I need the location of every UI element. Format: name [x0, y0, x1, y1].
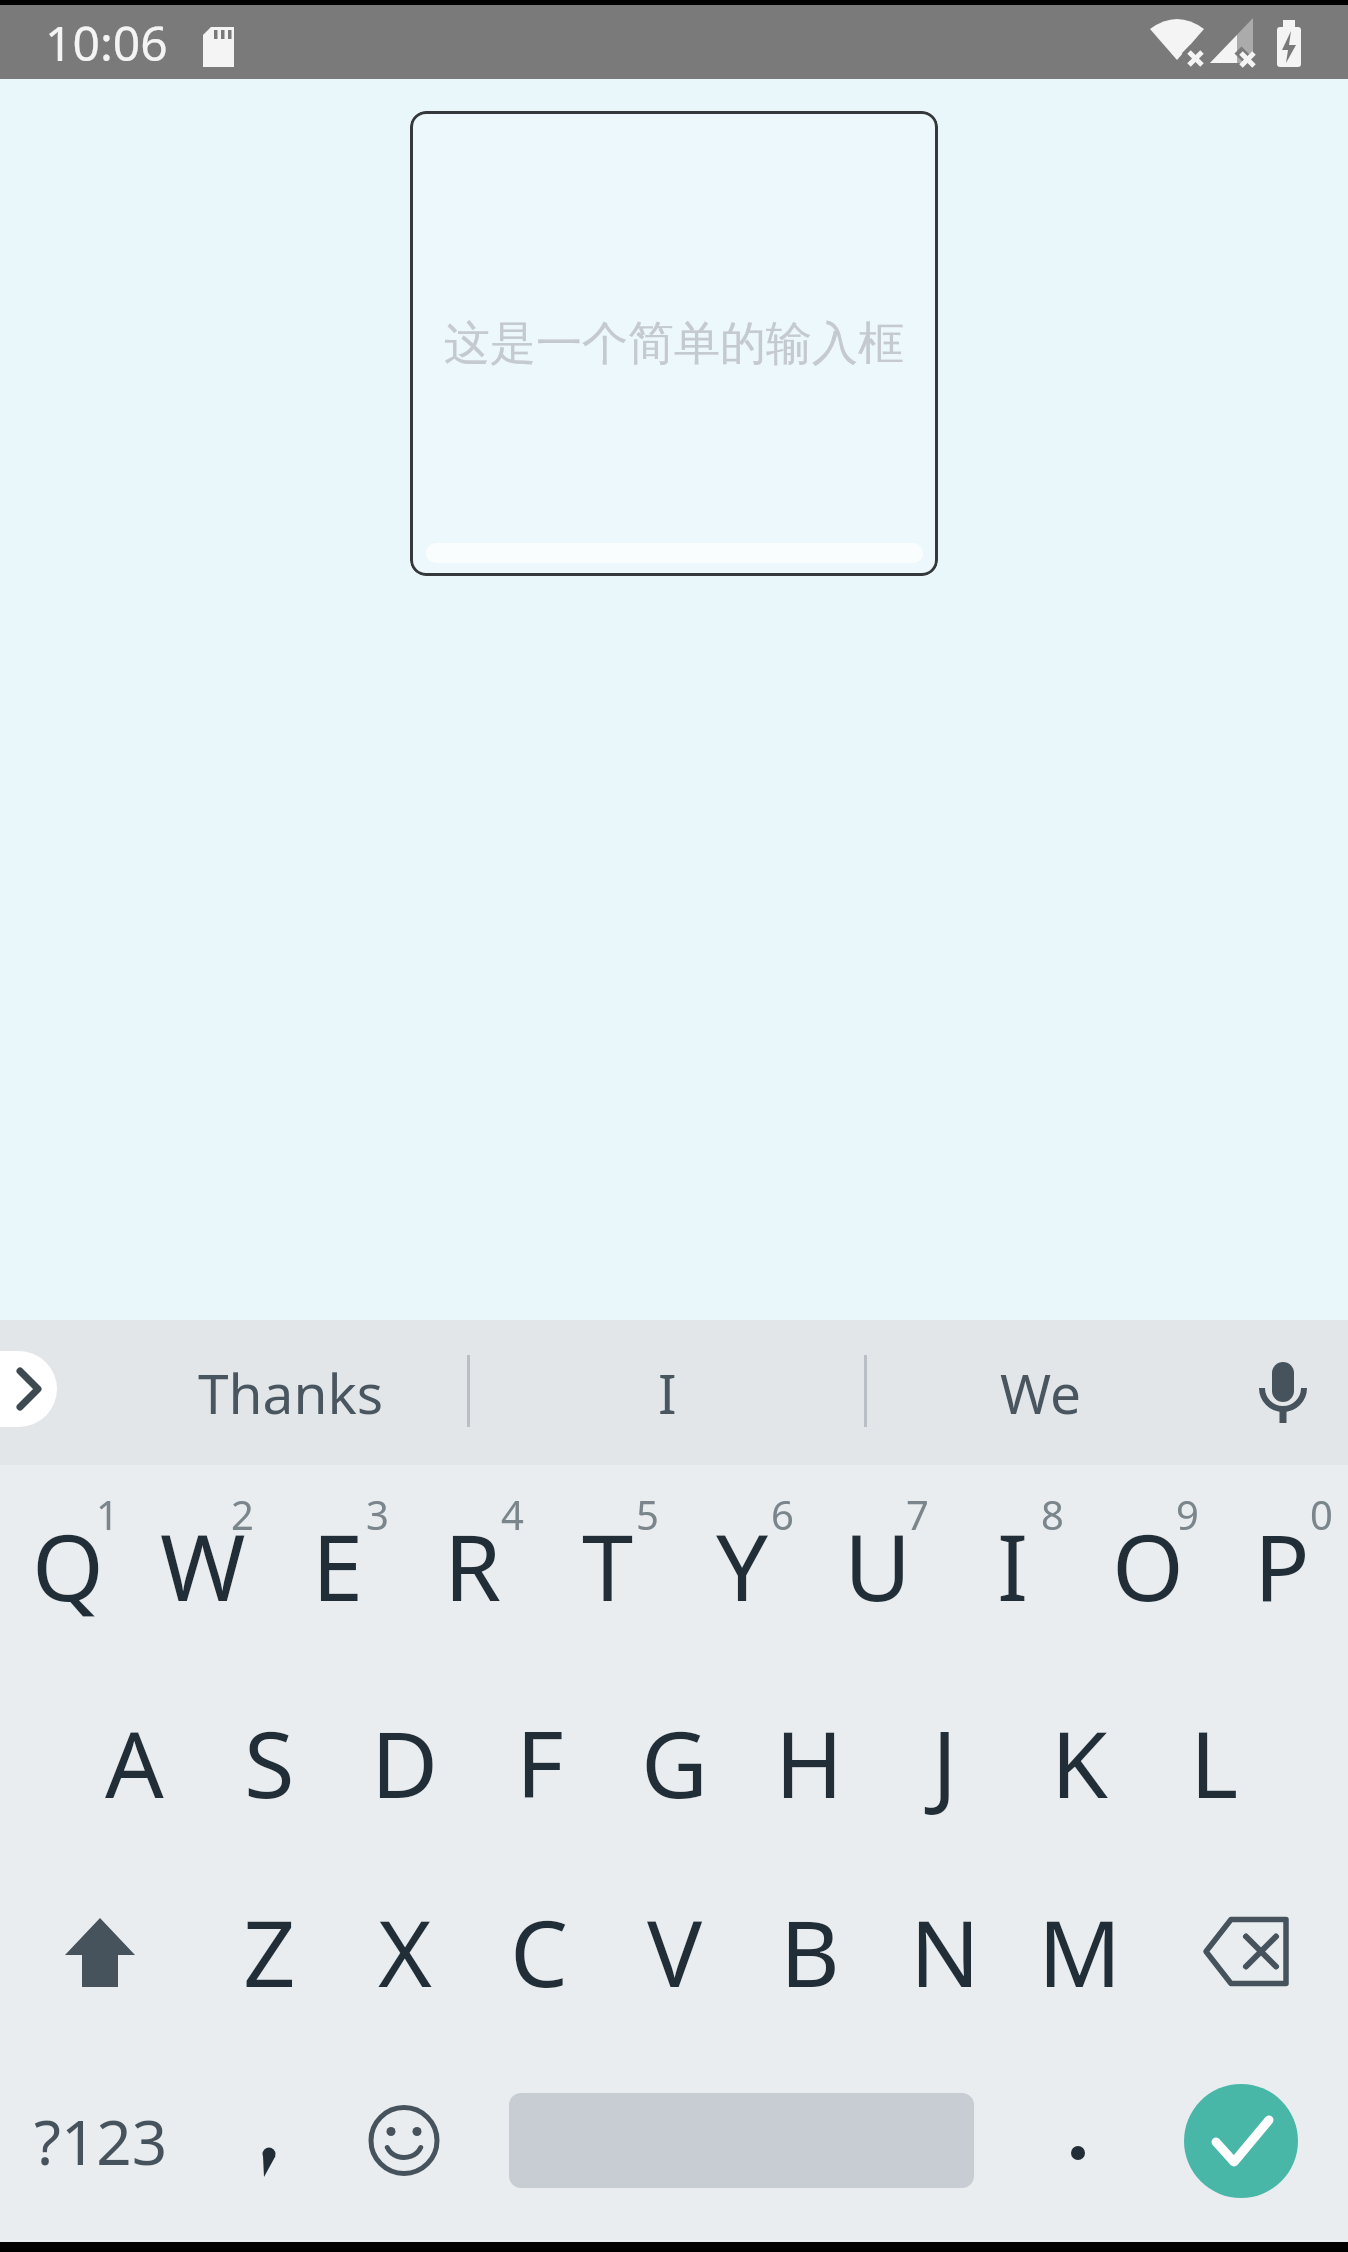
button[interactable]: K: [1012, 1666, 1147, 1859]
staticText: 9: [1176, 1487, 1199, 1541]
button[interactable]: [1146, 2044, 1348, 2237]
button[interactable]: Z: [202, 1855, 337, 2048]
button[interactable]: [472, 2044, 1011, 2237]
button[interactable]: V: [607, 1855, 742, 2048]
staticText: X: [378, 1889, 432, 2014]
staticText: Q: [32, 1503, 104, 1628]
staticText: D: [371, 1700, 439, 1825]
staticText: S: [244, 1700, 295, 1825]
button[interactable]: M: [1012, 1855, 1147, 2048]
staticText: J: [932, 1700, 958, 1825]
button[interactable]: J: [877, 1666, 1012, 1859]
button[interactable]: [1011, 2044, 1146, 2237]
button[interactable]: T: [540, 1469, 675, 1662]
button[interactable]: U: [810, 1469, 945, 1662]
staticText: 7: [906, 1487, 929, 1541]
button[interactable]: 这是一个简单的输入框: [410, 111, 938, 576]
button[interactable]: [202, 2044, 337, 2237]
button[interactable]: D: [337, 1666, 472, 1859]
staticText: G: [641, 1700, 708, 1825]
button[interactable]: G: [607, 1666, 742, 1859]
button[interactable]: Y: [675, 1469, 810, 1662]
button[interactable]: [1223, 1320, 1343, 1465]
button[interactable]: ?123: [0, 2044, 202, 2237]
button[interactable]: N: [877, 1855, 1012, 2048]
staticText: Thanks: [198, 1355, 384, 1430]
staticText: R: [444, 1503, 502, 1628]
staticText: F: [516, 1700, 564, 1825]
button[interactable]: F: [472, 1666, 607, 1859]
staticText: E: [312, 1503, 364, 1628]
staticText: I: [658, 1355, 677, 1430]
button[interactable]: O: [1080, 1469, 1215, 1662]
staticText: B: [780, 1889, 840, 2014]
button[interactable]: [1147, 1855, 1348, 2048]
button[interactable]: B: [742, 1855, 877, 2048]
staticText: C: [510, 1889, 569, 2014]
staticText: K: [1051, 1700, 1108, 1825]
staticText: P: [1254, 1503, 1310, 1628]
button[interactable]: Thanks: [181, 1320, 401, 1465]
button[interactable]: A: [67, 1666, 202, 1859]
button[interactable]: I: [557, 1320, 777, 1465]
staticText: O: [1112, 1503, 1184, 1628]
button[interactable]: S: [202, 1666, 337, 1859]
button[interactable]: P: [1215, 1469, 1348, 1662]
button[interactable]: H: [742, 1666, 877, 1859]
button[interactable]: Q: [0, 1469, 135, 1662]
button[interactable]: [337, 2044, 472, 2237]
staticText: L: [1190, 1700, 1239, 1825]
staticText: V: [647, 1889, 703, 2014]
button[interactable]: X: [337, 1855, 472, 2048]
staticText: I: [997, 1503, 1029, 1628]
staticText: U: [844, 1503, 912, 1628]
button[interactable]: We: [931, 1320, 1151, 1465]
button[interactable]: [0, 1351, 57, 1427]
staticText: Z: [243, 1889, 296, 2014]
staticText: ?123: [34, 2099, 168, 2183]
button[interactable]: I: [945, 1469, 1080, 1662]
staticText: 5: [636, 1487, 659, 1541]
staticText: 6: [771, 1487, 794, 1541]
staticText: We: [1000, 1355, 1082, 1430]
button[interactable]: W: [135, 1469, 270, 1662]
button[interactable]: L: [1147, 1666, 1282, 1859]
staticText: 1: [96, 1487, 119, 1541]
staticText: 这是一个简单的输入框: [444, 315, 904, 373]
button[interactable]: R: [405, 1469, 540, 1662]
staticText: M: [1038, 1889, 1122, 2014]
staticText: Y: [716, 1503, 769, 1628]
staticText: T: [582, 1503, 634, 1628]
staticText: A: [105, 1700, 164, 1825]
staticText: W: [160, 1503, 246, 1628]
staticText: H: [775, 1700, 844, 1825]
button[interactable]: [0, 1855, 202, 2048]
button[interactable]: E: [270, 1469, 405, 1662]
staticText: 8: [1041, 1487, 1064, 1541]
staticText: 2: [231, 1487, 254, 1541]
staticText: 10:06: [45, 10, 168, 75]
staticText: 4: [501, 1487, 524, 1541]
staticText: 0: [1310, 1487, 1333, 1541]
staticText: 3: [366, 1487, 389, 1541]
staticText: N: [910, 1889, 980, 2014]
button[interactable]: C: [472, 1855, 607, 2048]
